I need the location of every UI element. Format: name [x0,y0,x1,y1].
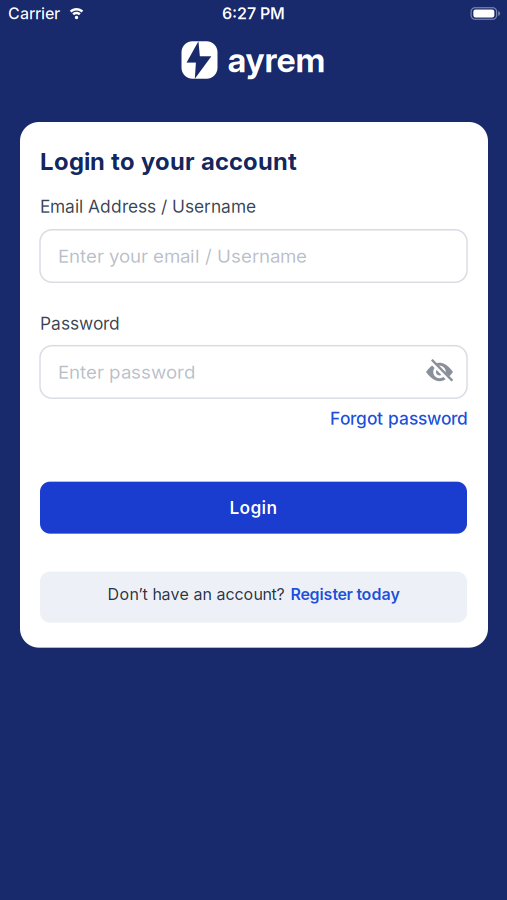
button[interactable]: Login [40,482,467,534]
staticText: Enter your email / Username [58,245,307,267]
button[interactable]: Forgot password [330,408,468,429]
staticText: Login to your account [40,147,297,175]
staticText: Login [229,497,277,518]
button[interactable]: Don’t have an account? [40,572,467,623]
staticText: Enter password [58,361,195,383]
staticText: Forgot password [330,408,468,429]
staticText: Register today [290,585,399,604]
staticText: Carrier [8,4,60,23]
staticText: Don’t have an account? [107,585,284,604]
staticText: 6:27 PM [222,4,285,23]
staticText: Email Address / Username [40,196,256,217]
button[interactable]: Show password [426,361,453,383]
staticText: Password [40,313,120,334]
button[interactable]: Email Address / Username [40,230,467,282]
staticText: ayrem [227,40,325,80]
button[interactable]: Password [40,346,467,398]
